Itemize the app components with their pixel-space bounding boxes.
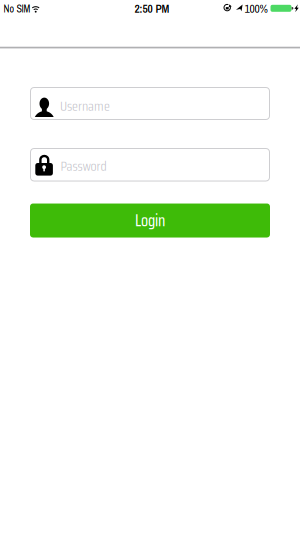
staticText bbox=[30, 150, 36, 180]
staticText: Password bbox=[60, 155, 106, 177]
textField[interactable] bbox=[30, 88, 270, 118]
staticText: No SIM bbox=[3, 2, 30, 16]
staticText bbox=[30, 88, 36, 118]
staticText: Login bbox=[135, 208, 165, 233]
staticText: 2:50 PM bbox=[134, 1, 169, 16]
staticText: Username bbox=[60, 95, 110, 117]
textField[interactable] bbox=[30, 150, 270, 180]
button[interactable]: Login bbox=[30, 203, 270, 237]
staticText: 100% bbox=[244, 1, 267, 16]
